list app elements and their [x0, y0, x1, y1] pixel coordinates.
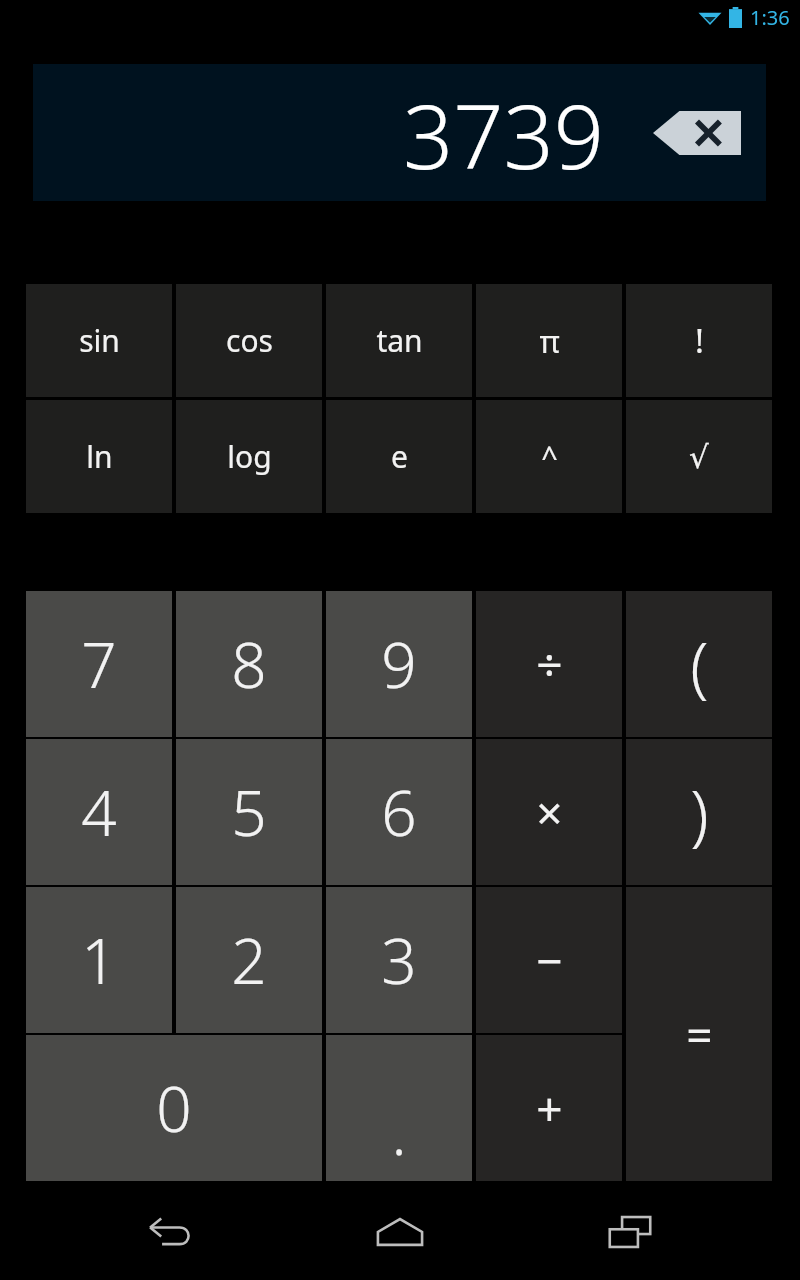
- staticText: ×: [536, 781, 563, 844]
- button[interactable]: Recent apps: [570, 1184, 690, 1280]
- button[interactable]: ): [626, 739, 772, 885]
- button[interactable]: (: [626, 591, 772, 737]
- button[interactable]: e: [326, 400, 472, 513]
- staticText: 5: [231, 770, 267, 854]
- staticText: +: [536, 1077, 563, 1140]
- staticText: log: [227, 436, 272, 477]
- button[interactable]: 8: [176, 591, 322, 737]
- staticText: 1: [81, 918, 117, 1002]
- button[interactable]: log: [176, 400, 322, 513]
- staticText: 8: [231, 622, 267, 706]
- button[interactable]: 5: [176, 739, 322, 885]
- staticText: ^: [541, 437, 558, 476]
- button[interactable]: 3: [326, 887, 472, 1033]
- staticText: sin: [79, 320, 120, 361]
- staticText: !: [695, 318, 704, 363]
- button[interactable]: 4: [26, 739, 172, 885]
- button[interactable]: Home: [340, 1184, 460, 1280]
- button[interactable]: 9: [326, 591, 472, 737]
- button[interactable]: 2: [176, 887, 322, 1033]
- staticText: 3739: [403, 75, 604, 195]
- button[interactable]: 3739: [33, 64, 766, 201]
- button[interactable]: .: [326, 1035, 472, 1181]
- staticText: ln: [86, 436, 113, 477]
- button[interactable]: 0: [26, 1035, 322, 1181]
- staticText: √: [689, 439, 709, 475]
- staticText: π: [539, 320, 560, 362]
- button[interactable]: cos: [176, 284, 322, 397]
- staticText: 0: [156, 1066, 192, 1150]
- staticText: ÷: [536, 633, 563, 696]
- button[interactable]: 6: [326, 739, 472, 885]
- staticText: 2: [231, 918, 267, 1002]
- staticText: ): [690, 767, 709, 857]
- staticText: 6: [381, 770, 417, 854]
- button[interactable]: 7: [26, 591, 172, 737]
- staticText: tan: [376, 320, 423, 361]
- button[interactable]: Delete: [641, 103, 753, 163]
- staticText: 3: [381, 918, 417, 1002]
- button[interactable]: −: [476, 887, 622, 1033]
- button[interactable]: ln: [26, 400, 172, 513]
- button[interactable]: =: [626, 887, 772, 1181]
- button[interactable]: ×: [476, 739, 622, 885]
- staticText: =: [686, 1003, 713, 1066]
- button[interactable]: Back: [110, 1184, 230, 1280]
- button[interactable]: π: [476, 284, 622, 397]
- button[interactable]: tan: [326, 284, 472, 397]
- staticText: (: [690, 619, 709, 709]
- staticText: 4: [81, 770, 117, 854]
- button[interactable]: !: [626, 284, 772, 397]
- staticText: 7: [81, 622, 117, 706]
- staticText: e: [391, 436, 408, 477]
- button[interactable]: ÷: [476, 591, 622, 737]
- button[interactable]: 1: [26, 887, 172, 1033]
- staticText: .: [391, 1089, 407, 1173]
- staticText: 1:36: [750, 4, 790, 31]
- button[interactable]: +: [476, 1035, 622, 1181]
- button[interactable]: sin: [26, 284, 172, 397]
- button[interactable]: ^: [476, 400, 622, 513]
- staticText: cos: [226, 320, 273, 361]
- staticText: −: [536, 929, 563, 992]
- staticText: 9: [381, 622, 417, 706]
- button[interactable]: √: [626, 400, 772, 513]
